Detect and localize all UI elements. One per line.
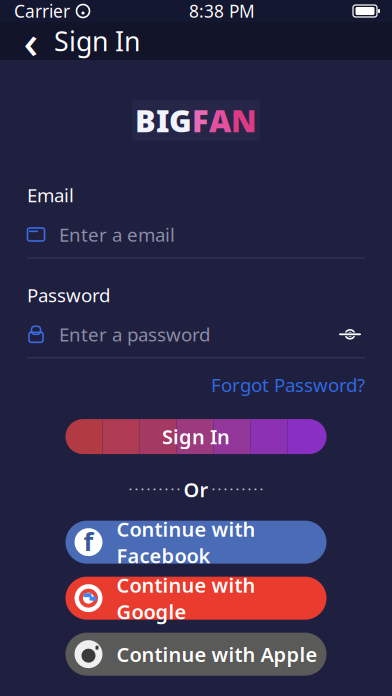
button[interactable]: Forgot Password? bbox=[211, 372, 365, 397]
staticText: Continue with Google bbox=[116, 572, 255, 625]
staticText: Continue with Apple bbox=[116, 641, 317, 667]
button[interactable]: Sign In bbox=[65, 419, 326, 454]
staticText: f bbox=[83, 524, 93, 558]
staticText: Sign In bbox=[162, 423, 230, 450]
staticText: A bbox=[209, 100, 231, 141]
button[interactable]: Continue with Apple bbox=[65, 633, 326, 676]
staticText: Enter a password bbox=[59, 322, 210, 347]
button[interactable]: Back bbox=[16, 23, 46, 59]
button[interactable]: f bbox=[65, 521, 326, 564]
button[interactable]: Show password bbox=[335, 321, 365, 347]
staticText: Password bbox=[27, 282, 110, 307]
staticText: Forgot Password? bbox=[211, 372, 365, 397]
staticText: N bbox=[231, 100, 257, 141]
staticText: Email bbox=[27, 183, 74, 207]
staticText: Sign In bbox=[54, 23, 140, 59]
staticText: BIG bbox=[135, 100, 192, 141]
staticText: Enter a email bbox=[59, 222, 175, 247]
staticText: Or bbox=[183, 476, 208, 503]
button[interactable]: Continue with Google bbox=[65, 577, 326, 620]
staticText: 8:38 PM bbox=[189, 0, 255, 22]
staticText: F bbox=[192, 100, 209, 141]
staticText: Continue with Facebook bbox=[116, 516, 255, 569]
staticText: ‹ bbox=[23, 11, 38, 71]
staticText: Carrier bbox=[14, 0, 70, 22]
